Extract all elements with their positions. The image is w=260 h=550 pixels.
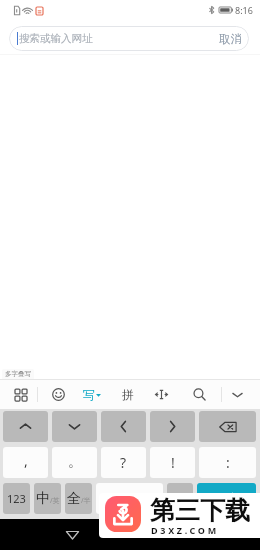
button[interactable]: Space (96, 483, 163, 514)
staticText: : (226, 453, 230, 472)
button[interactable]: Back (59, 522, 85, 548)
button[interactable] (199, 411, 256, 442)
button[interactable]: , (3, 447, 48, 478)
staticText: 写 (83, 387, 95, 402)
button[interactable]: Enter (197, 483, 256, 514)
button[interactable]: Emoji (42, 380, 74, 409)
button[interactable]: Search (183, 380, 215, 409)
staticText: /英 (50, 496, 60, 506)
button[interactable]: 多字叠写 (2, 369, 34, 379)
button[interactable] (3, 411, 48, 442)
button[interactable]: 中 (34, 483, 61, 514)
staticText: 确定 (215, 491, 239, 506)
button[interactable]: : (199, 447, 256, 478)
button[interactable]: ! (150, 447, 195, 478)
button[interactable]: 。 (52, 447, 97, 478)
staticText: 123 (7, 491, 26, 506)
button[interactable]: 拼 (112, 380, 144, 409)
button[interactable]: Keyboard layouts (5, 380, 37, 409)
button[interactable]: Move cursor (145, 380, 177, 409)
staticText: 多字叠写 (5, 370, 31, 378)
staticText: 取消 (219, 32, 242, 46)
button[interactable]: 123 (3, 483, 30, 514)
button[interactable]: 搜索或输入网址 (9, 26, 249, 51)
button[interactable] (52, 411, 97, 442)
staticText: , (24, 451, 28, 470)
staticText: 中 (36, 490, 50, 508)
button[interactable]: Hide keyboard (221, 380, 253, 409)
staticText: 拼 (122, 387, 134, 402)
staticText: ? (120, 453, 127, 472)
button[interactable] (150, 411, 195, 442)
staticText: ! (171, 453, 175, 472)
button[interactable]: 全 (65, 483, 92, 514)
staticText: 符 (174, 491, 186, 506)
staticText: D3XZ.COM (151, 524, 219, 536)
staticText: 。 (68, 453, 82, 471)
button[interactable]: Symbols (167, 483, 193, 514)
button[interactable]: ? (101, 447, 146, 478)
staticText: /半 (81, 496, 91, 506)
staticText: 搜索或输入网址 (19, 32, 93, 45)
staticText: 全 (67, 490, 81, 508)
button[interactable]: 写 (76, 380, 108, 409)
staticText: 第三下载 (150, 495, 250, 526)
staticText: 8:16 (235, 4, 253, 16)
button[interactable] (101, 411, 146, 442)
